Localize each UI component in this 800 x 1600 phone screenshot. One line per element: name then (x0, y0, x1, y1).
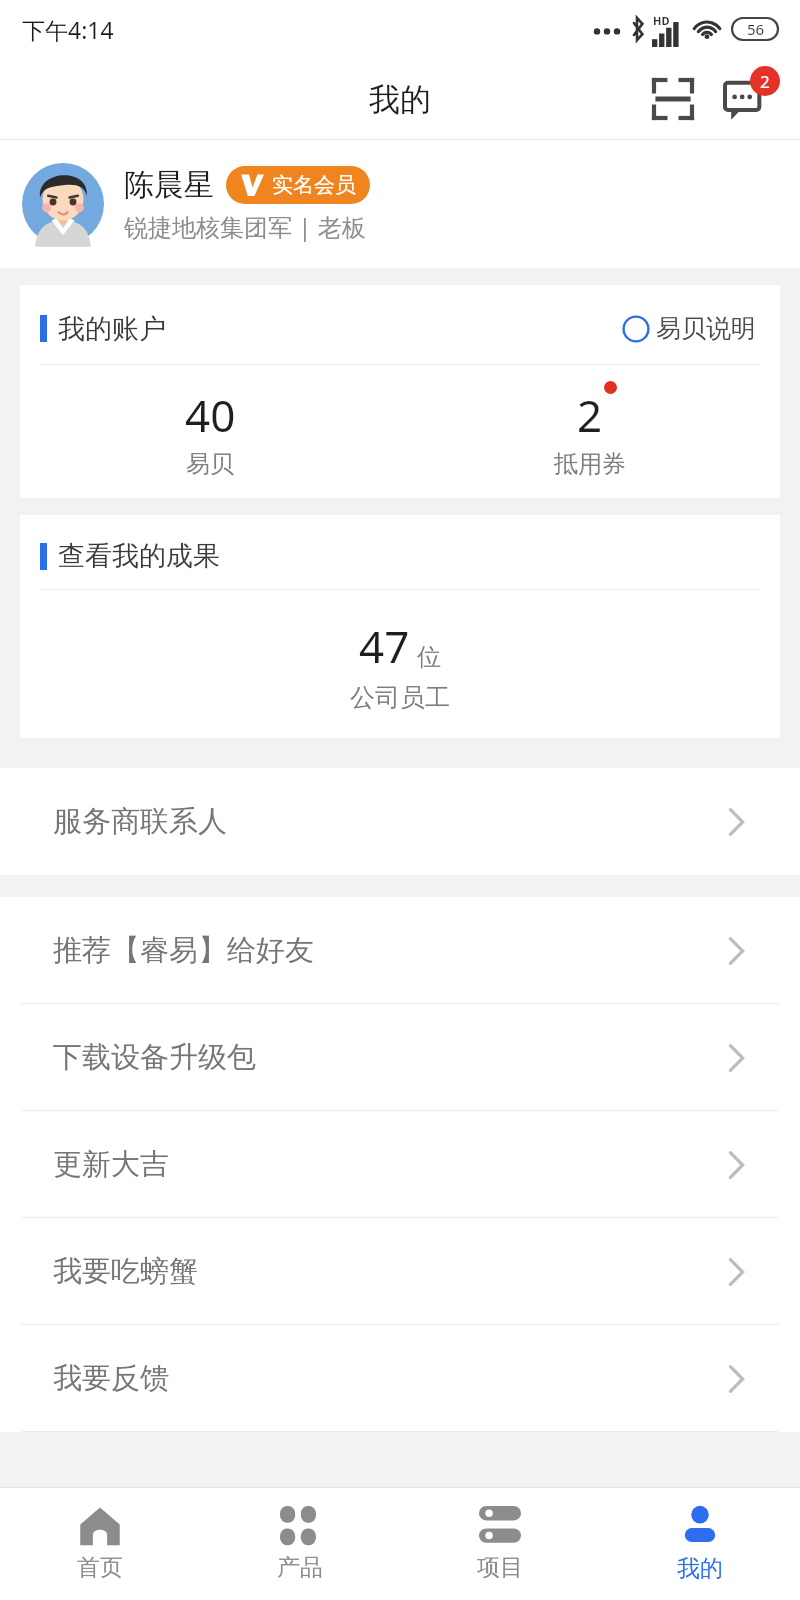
staticText: 公司员工 (350, 682, 450, 713)
staticText: 推荐【睿易】给好友 (53, 932, 314, 969)
staticText: 56 (747, 19, 765, 39)
button[interactable]: 2 (400, 365, 780, 498)
button[interactable]: 陈晨星 (0, 140, 800, 268)
staticText: 陈晨星 (124, 166, 214, 204)
button[interactable]: 易贝说明 (618, 309, 760, 348)
button[interactable]: 推荐【睿易】给好友 (0, 897, 800, 1004)
staticText: 47 (359, 616, 410, 676)
button[interactable]: 40 (20, 365, 400, 498)
staticText: HD (653, 13, 670, 28)
staticText: 更新大吉 (53, 1146, 169, 1183)
button[interactable]: Scan (644, 70, 702, 128)
staticText: 我的账户 (58, 312, 166, 346)
button[interactable]: 首页 (0, 1488, 200, 1600)
staticText: 首页 (77, 1553, 123, 1582)
staticText: 查看我的成果 (58, 539, 220, 573)
staticText: 40 (185, 385, 236, 445)
staticText: 下载设备升级包 (53, 1039, 256, 1076)
staticText: 易贝说明 (656, 313, 756, 344)
staticText: 我要反馈 (53, 1360, 169, 1397)
staticText: 服务商联系人 (53, 803, 227, 840)
staticText: 抵用券 (554, 449, 626, 479)
button[interactable]: 我要反馈 (0, 1325, 800, 1432)
staticText: 产品 (277, 1553, 323, 1582)
button[interactable]: 服务商联系人 (0, 768, 800, 875)
button[interactable]: 我要吃螃蟹 (0, 1218, 800, 1325)
button[interactable]: 查看我的成果 (20, 515, 780, 738)
button[interactable]: 项目 (400, 1488, 600, 1600)
staticText: 项目 (477, 1553, 523, 1582)
button[interactable]: 下载设备升级包 (0, 1004, 800, 1111)
staticText: 我的 (677, 1554, 723, 1583)
staticText: 下午4:14 (22, 14, 114, 45)
staticText: 我的 (369, 80, 431, 119)
staticText: 我要吃螃蟹 (53, 1253, 198, 1290)
staticText: 实名会员 (272, 172, 356, 198)
button[interactable]: 产品 (200, 1488, 400, 1600)
button[interactable]: 我的 (600, 1488, 800, 1600)
button[interactable]: Messages (716, 68, 778, 130)
button[interactable]: 实名会员 (226, 166, 370, 204)
staticText: 锐捷地核集团军 | 老板 (124, 210, 366, 243)
staticText: 2 (577, 385, 603, 445)
staticText: 2 (760, 70, 770, 93)
button[interactable]: 更新大吉 (0, 1111, 800, 1218)
staticText: 位 (417, 642, 441, 672)
staticText: 易贝 (186, 449, 234, 479)
